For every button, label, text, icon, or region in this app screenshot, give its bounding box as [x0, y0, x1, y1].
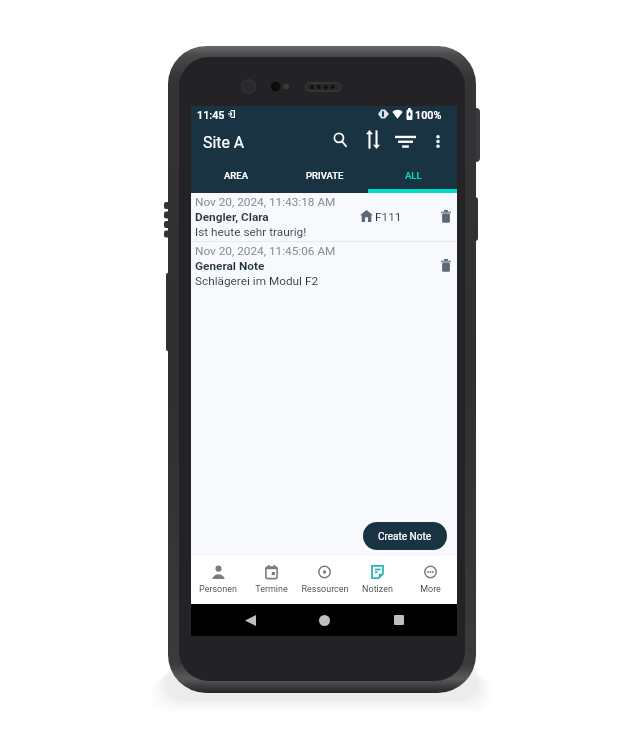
button[interactable]: Termine: [245, 556, 298, 604]
button[interactable]: More: [404, 556, 457, 604]
staticText: Personen: [199, 584, 237, 595]
staticText: AREA: [224, 170, 248, 181]
button[interactable]: Delete note: [436, 206, 456, 226]
staticText: Notizen: [362, 584, 393, 595]
button[interactable]: AREA: [191, 158, 279, 193]
staticText: Termine: [255, 584, 288, 595]
staticText: PRIVATE: [306, 170, 344, 181]
staticText: More: [420, 584, 441, 595]
staticText: 100%: [415, 109, 442, 122]
button[interactable]: Personen: [191, 556, 245, 604]
button[interactable]: Recent apps: [383, 604, 415, 636]
staticText: Dengler, Clara: [195, 210, 269, 224]
button[interactable]: Sort: [360, 126, 386, 152]
button[interactable]: PRIVATE: [279, 158, 368, 193]
button[interactable]: Create Note: [363, 522, 447, 550]
button[interactable]: Ressourcen: [298, 556, 351, 604]
button[interactable]: Delete note: [436, 255, 456, 275]
button[interactable]: Nov 20, 2024, 11:45:06 AM: [191, 242, 457, 290]
staticText: Ist heute sehr traurig!: [195, 225, 307, 239]
staticText: Schlägerei im Modul F2: [195, 274, 319, 288]
button[interactable]: ALL: [368, 158, 457, 193]
staticText: Nov 20, 2024, 11:43:18 AM: [195, 195, 336, 209]
button[interactable]: Home: [308, 604, 340, 636]
staticText: 11:45: [197, 109, 225, 122]
staticText: General Note: [195, 259, 265, 273]
staticText: Create Note: [378, 531, 432, 543]
staticText: ALL: [405, 170, 422, 181]
staticText: Ressourcen: [301, 584, 349, 595]
button[interactable]: Nov 20, 2024, 11:43:18 AM: [191, 193, 457, 241]
staticText: Nov 20, 2024, 11:45:06 AM: [195, 244, 336, 258]
button[interactable]: Filter: [392, 128, 418, 154]
staticText: F111: [375, 210, 402, 224]
button[interactable]: Back: [234, 604, 266, 636]
button[interactable]: More options: [426, 129, 450, 153]
staticText: Site A: [203, 133, 244, 152]
button[interactable]: Search: [327, 127, 353, 153]
button[interactable]: Notizen: [351, 556, 404, 604]
